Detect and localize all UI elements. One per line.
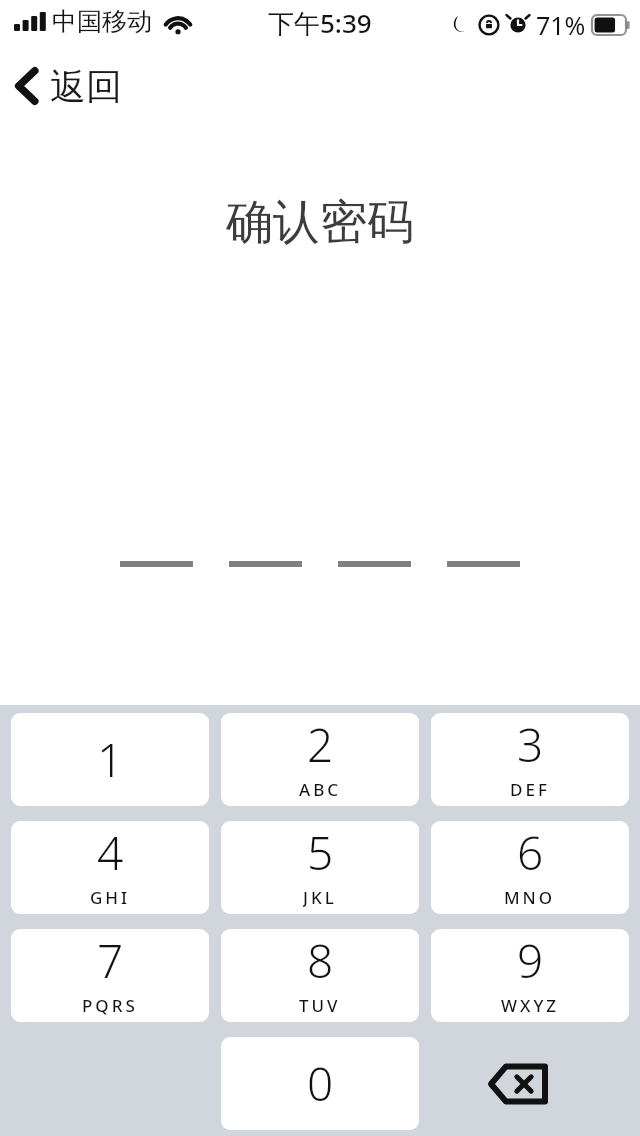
staticText: MNO bbox=[504, 886, 556, 908]
staticText: GHI bbox=[90, 886, 131, 908]
staticText: ABC bbox=[299, 778, 342, 800]
staticText: 71% bbox=[536, 8, 586, 42]
staticText: 8 bbox=[307, 929, 334, 992]
button[interactable]: 1 bbox=[11, 713, 209, 806]
button[interactable]: 6 bbox=[431, 821, 629, 914]
staticText: 下午5:39 bbox=[268, 5, 372, 41]
staticText: 3 bbox=[517, 713, 544, 776]
staticText: 返回 bbox=[50, 64, 122, 109]
button[interactable]: Delete bbox=[419, 1037, 617, 1130]
staticText: 1 bbox=[97, 728, 124, 791]
staticText: 中国移动 bbox=[52, 6, 152, 37]
button[interactable]: 4 bbox=[11, 821, 209, 914]
staticText: WXYZ bbox=[501, 994, 560, 1016]
staticText: JKL bbox=[303, 886, 337, 908]
button[interactable]: 3 bbox=[431, 713, 629, 806]
staticText: 6 bbox=[517, 821, 544, 884]
staticText: TUV bbox=[299, 994, 341, 1016]
button[interactable]: 2 bbox=[221, 713, 419, 806]
staticText: 4 bbox=[97, 821, 124, 884]
button[interactable]: 9 bbox=[431, 929, 629, 1022]
staticText: 9 bbox=[517, 929, 544, 992]
staticText: DEF bbox=[510, 778, 550, 800]
staticText: PQRS bbox=[82, 994, 138, 1016]
staticText: 2 bbox=[307, 713, 334, 776]
button[interactable]: 0 bbox=[221, 1037, 419, 1130]
button[interactable]: 7 bbox=[11, 929, 209, 1022]
button[interactable]: 8 bbox=[221, 929, 419, 1022]
staticText: 0 bbox=[307, 1052, 334, 1115]
button[interactable]: 返回 bbox=[14, 58, 122, 114]
staticText: 确认密码 bbox=[0, 193, 640, 252]
button[interactable]: 5 bbox=[221, 821, 419, 914]
staticText: 5 bbox=[307, 821, 334, 884]
staticText: 7 bbox=[97, 929, 124, 992]
